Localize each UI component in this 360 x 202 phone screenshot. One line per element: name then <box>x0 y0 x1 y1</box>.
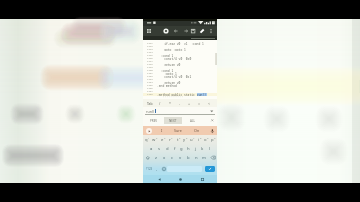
staticText: i <box>198 137 200 143</box>
button[interactable]: l <box>206 144 213 153</box>
button[interactable]: t <box>175 135 182 144</box>
button[interactable]: Tab <box>144 99 155 107</box>
button[interactable]: w <box>151 135 159 144</box>
button[interactable]: * <box>165 99 174 107</box>
button[interactable]: PREV <box>146 117 162 124</box>
staticText: m <box>202 155 206 161</box>
staticText: 1454 <box>147 81 153 84</box>
staticText: I <box>161 128 163 133</box>
staticText: :cond_1 <box>157 54 174 57</box>
button[interactable]: More options <box>206 26 216 36</box>
button[interactable]: I <box>156 126 168 135</box>
button[interactable]: n <box>192 153 200 162</box>
button[interactable]: o <box>203 135 210 144</box>
button[interactable]: d <box>163 144 171 153</box>
button[interactable]: Voice input <box>209 128 215 134</box>
staticText: 6 <box>186 136 188 139</box>
staticText: 1448 <box>147 63 153 66</box>
button[interactable]: Home <box>174 175 186 183</box>
staticText: 0 <box>214 136 216 139</box>
staticText: 1441 <box>147 42 153 45</box>
staticText: .end method <box>157 84 177 87</box>
button[interactable]: Undo <box>171 26 181 36</box>
staticText: return v0 <box>157 63 181 66</box>
button[interactable]: x <box>160 153 168 162</box>
button[interactable]: m <box>200 153 208 162</box>
button[interactable]: v <box>176 153 184 162</box>
button[interactable]: f <box>171 144 178 153</box>
staticText: if-eqz v0, v1, :cond_1 <box>157 42 204 45</box>
button[interactable]: / <box>155 99 164 107</box>
staticText: ALL <box>190 119 196 123</box>
button[interactable]: NEXT <box>164 117 182 124</box>
button[interactable]: h <box>185 144 192 153</box>
staticText: b <box>187 155 190 161</box>
button[interactable]: z <box>152 153 160 162</box>
button[interactable]: Shift <box>143 153 152 162</box>
button[interactable]: Redo <box>181 26 191 36</box>
button[interactable]: ALL <box>186 117 200 124</box>
staticText: u <box>190 137 193 143</box>
button[interactable]: Back <box>153 175 165 183</box>
button[interactable]: - <box>175 99 184 107</box>
staticText: y <box>183 137 186 143</box>
button[interactable]: Backspace <box>208 153 217 162</box>
staticText: t <box>177 137 179 143</box>
button[interactable]: y <box>182 135 189 144</box>
staticText: 1455 <box>147 84 153 87</box>
button[interactable]: j <box>192 144 199 153</box>
button[interactable]: g <box>178 144 185 153</box>
button[interactable]: b <box>184 153 192 162</box>
button[interactable]: s <box>155 144 163 153</box>
staticText: 1452 <box>147 75 153 78</box>
button[interactable]: ?123 <box>144 162 154 175</box>
staticText: g <box>180 146 183 152</box>
button[interactable]: Expand suggestions <box>146 128 152 134</box>
button[interactable]: Recents <box>196 175 208 183</box>
button[interactable]: p <box>210 135 217 144</box>
button[interactable]: = <box>195 99 204 107</box>
button[interactable]: run() <box>146 107 214 115</box>
button[interactable]: i <box>196 135 203 144</box>
button[interactable]: + <box>185 99 194 107</box>
button[interactable]: Save <box>188 26 198 36</box>
staticText: :goto_1 <box>157 72 177 75</box>
staticText: 5 <box>179 136 181 139</box>
staticText: 1450 <box>147 69 153 72</box>
staticText: < <box>208 101 211 106</box>
staticText: 8 <box>200 136 202 139</box>
staticText: 7 <box>193 136 195 139</box>
staticText: 1456 <box>147 87 153 90</box>
staticText: ?123 <box>146 167 153 171</box>
button[interactable]: e <box>159 135 167 144</box>
staticText: 9 <box>207 136 209 139</box>
staticText: c <box>171 155 174 161</box>
button[interactable]: < <box>205 99 214 107</box>
button[interactable]: , <box>154 162 160 175</box>
button[interactable]: r <box>167 135 175 144</box>
button[interactable]: u <box>189 135 196 144</box>
button[interactable]: Edit <box>197 26 207 36</box>
button[interactable]: Run <box>161 26 171 36</box>
button[interactable]: Enter <box>205 166 215 172</box>
staticText: PREV <box>150 119 158 123</box>
button[interactable]: a <box>147 144 155 153</box>
button[interactable]: q <box>143 135 151 144</box>
button[interactable]: Close search <box>209 117 216 124</box>
button[interactable]: Sure <box>172 126 184 135</box>
staticText: n <box>195 155 198 161</box>
staticText: const/4 v0, 0x0 <box>157 57 192 60</box>
staticText: 1 <box>148 136 150 139</box>
button[interactable]: Menu <box>144 26 154 36</box>
staticText: NEXT <box>169 119 177 123</box>
staticText: a <box>150 146 153 152</box>
staticText: Tab <box>147 101 153 106</box>
staticText: 1451 <box>147 72 153 75</box>
staticText: o <box>204 137 207 143</box>
staticText: r <box>169 137 171 143</box>
button[interactable]: On <box>191 126 203 135</box>
button[interactable]: c <box>168 153 176 162</box>
button[interactable]: k <box>199 144 206 153</box>
button[interactable]: Emoji <box>160 162 167 175</box>
